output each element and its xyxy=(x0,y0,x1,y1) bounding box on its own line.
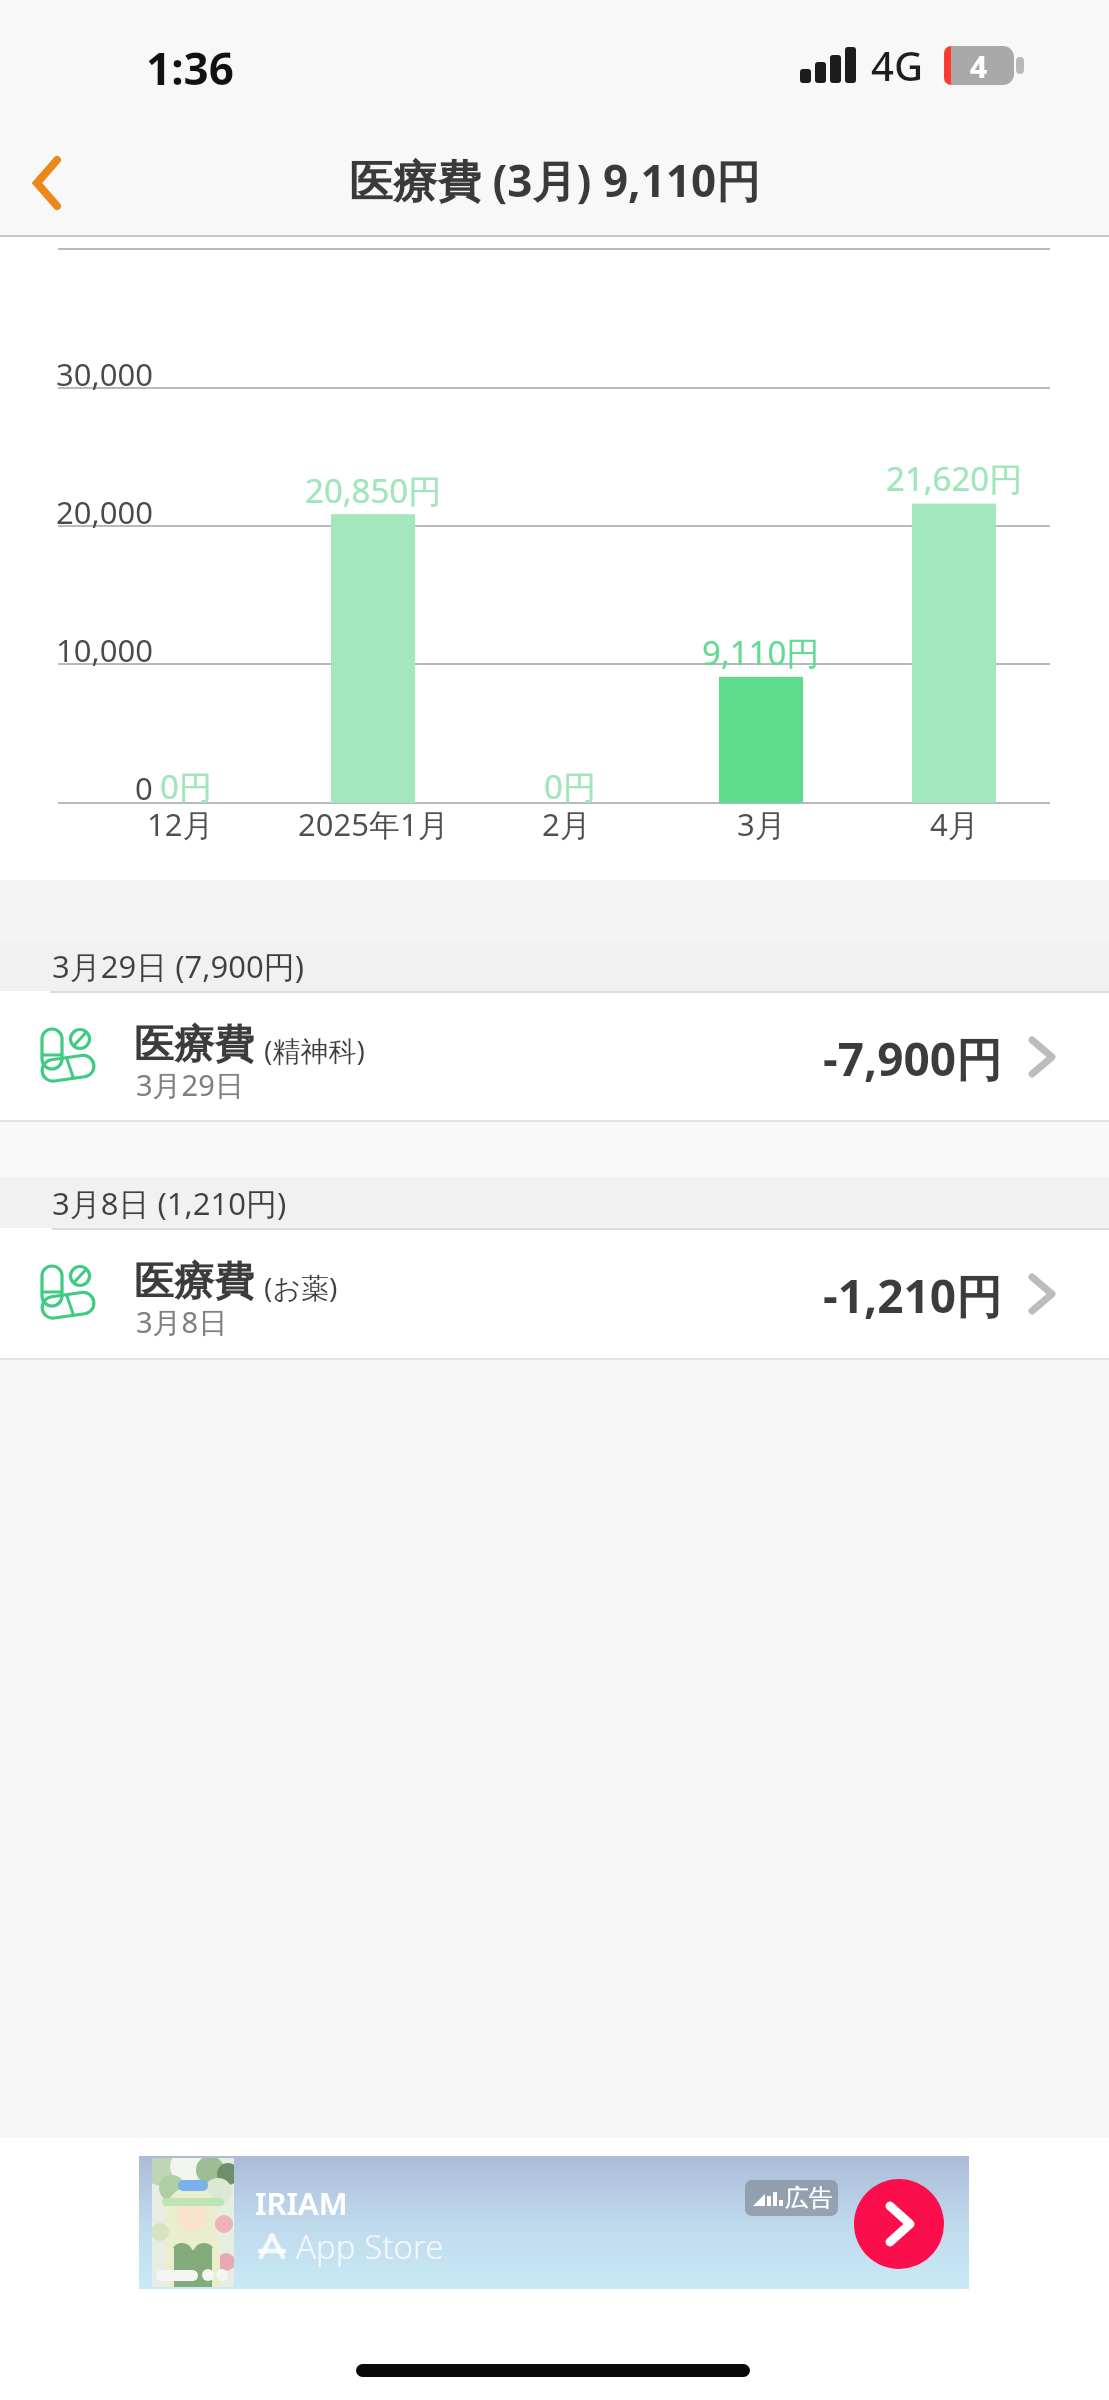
staticText: 10,000 xyxy=(56,629,153,671)
staticText: 2月 xyxy=(542,803,591,845)
staticText: -1,210円 xyxy=(823,1264,1003,1324)
staticText: 4月 xyxy=(930,803,979,845)
staticText: 医療費 xyxy=(134,1256,254,1306)
staticText: 12月 xyxy=(147,803,214,845)
staticText: 4G xyxy=(871,38,923,92)
staticText: 9,110円 xyxy=(702,630,820,674)
staticText: 3月8日 (1,210円) xyxy=(52,1182,287,1224)
staticText: 0円 xyxy=(544,764,596,808)
staticText: 医療費 (3月) 9,110円 xyxy=(349,150,761,210)
staticText: 21,620円 xyxy=(886,456,1023,500)
staticText: IRIAM xyxy=(255,2182,348,2220)
staticText: 2025年1月 xyxy=(298,803,449,845)
button[interactable] xyxy=(2,135,92,230)
staticText: 広告 xyxy=(785,2183,833,2213)
staticText: 医療費 xyxy=(134,1019,254,1069)
staticText: 20,850円 xyxy=(305,468,442,512)
staticText: (精神科) xyxy=(264,1031,365,1069)
staticText: 1:36 xyxy=(146,38,234,92)
button[interactable] xyxy=(854,2179,944,2269)
button[interactable] xyxy=(0,1230,1109,1358)
staticText: 20,000 xyxy=(56,491,153,533)
staticText: 4 xyxy=(970,46,988,85)
staticText: 3月29日 xyxy=(136,1065,244,1105)
staticText: (お薬) xyxy=(264,1268,338,1306)
staticText: 30,000 xyxy=(56,353,153,395)
staticText: -7,900円 xyxy=(823,1027,1003,1087)
staticText: App Store xyxy=(296,2224,444,2268)
staticText: 0 xyxy=(135,767,153,809)
button[interactable] xyxy=(0,993,1109,1121)
button[interactable]: IRIAM xyxy=(139,2156,969,2289)
staticText: 3月29日 (7,900円) xyxy=(52,945,305,987)
staticText: 0円 xyxy=(160,764,212,808)
staticText: 3月8日 xyxy=(136,1302,228,1342)
staticText: 3月 xyxy=(737,803,786,845)
